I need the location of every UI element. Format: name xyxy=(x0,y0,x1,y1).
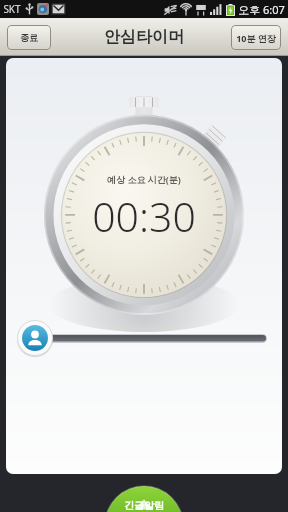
staticText: 예상 소요 시간(분) xyxy=(107,173,181,185)
button[interactable]: 긴급알림 xyxy=(105,486,183,512)
button[interactable]: 10분 연장 xyxy=(231,25,281,50)
staticText: SKT xyxy=(3,2,21,16)
staticText: 종료 xyxy=(20,32,38,43)
staticText: 00:30 xyxy=(92,188,196,244)
staticText: 안심타이머 xyxy=(104,27,184,47)
button[interactable]: 종료 xyxy=(7,25,51,50)
staticText: 긴급알림 xyxy=(124,499,164,512)
button[interactable]: Slide to confirm safety xyxy=(12,318,282,358)
staticText: 오후 6:07 xyxy=(238,2,285,17)
staticText: 10분 연장 xyxy=(236,32,276,44)
